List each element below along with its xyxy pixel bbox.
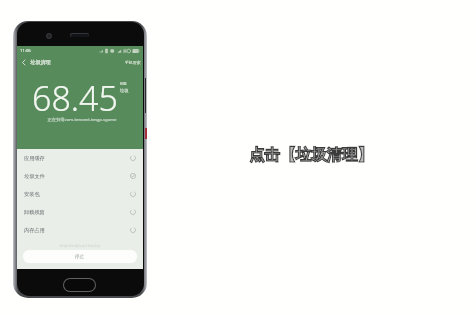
staticText: 应用缓存 — [24, 155, 45, 162]
staticText: 垃圾文件 — [24, 173, 45, 180]
staticText: 清理时请勿退出或关闭本页面 — [59, 244, 101, 248]
staticText: MB — [120, 81, 127, 87]
button[interactable]: 应用缓存 — [17, 149, 143, 167]
staticText: 68.45 — [32, 75, 118, 121]
button[interactable]: 停止 — [23, 250, 137, 263]
staticText: 卸载残留 — [24, 209, 45, 216]
button[interactable]: 卸载残留 — [17, 203, 143, 221]
staticText: 停止 — [75, 254, 85, 260]
button[interactable]: 安装包 — [17, 185, 143, 203]
staticText: 手机管家 — [125, 60, 141, 65]
staticText: 垃圾清理 — [30, 59, 51, 66]
staticText: 点击【垃圾清理】 — [249, 145, 373, 165]
button[interactable]: 垃圾文件 — [17, 167, 143, 185]
button[interactable]: 内存占用 — [17, 221, 143, 239]
button[interactable]: 手机管家 — [125, 60, 141, 65]
staticText: 垃圾 — [120, 88, 129, 93]
button[interactable]: Back — [19, 58, 28, 67]
staticText: 安装包 — [24, 191, 40, 198]
staticText: 正在扫描com.tencent.tmgp.sgame — [47, 116, 117, 122]
staticText: 11:06 — [20, 48, 31, 54]
staticText: 点击【垃圾清理】 — [249, 145, 373, 165]
staticText: 内存占用 — [24, 227, 45, 234]
